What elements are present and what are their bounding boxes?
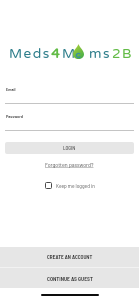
staticText: Keep me logged in [56,182,95,189]
button[interactable]: Keep me logged in [45,182,95,189]
staticText: 2B [112,46,133,62]
staticText: Password [6,114,23,119]
staticText: CREATE AN ACCOUNT [47,254,93,260]
button[interactable]: LOGIN [5,142,134,154]
button[interactable]: Forgotten password? [45,161,94,168]
button[interactable]: CONTINUE AS GUEST [0,268,139,288]
staticText: Email [6,87,16,92]
staticText: M [62,46,77,62]
staticText: 4 [51,46,62,62]
staticText: CONTINUE AS GUEST [47,275,93,282]
staticText: ms [89,46,112,62]
staticText: LOGIN [63,145,76,151]
staticText: Meds [9,46,51,62]
button[interactable]: CREATE AN ACCOUNT [0,247,139,267]
